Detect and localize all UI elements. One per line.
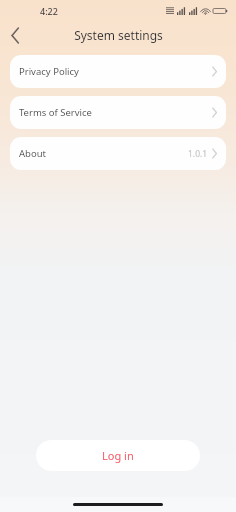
button[interactable]: Log in	[36, 440, 200, 471]
staticText: 4:22	[40, 5, 58, 17]
button[interactable]: Privacy Policy	[10, 55, 226, 88]
button[interactable]: Back	[0, 22, 30, 48]
staticText: Log in	[102, 448, 134, 463]
staticText: System settings	[74, 27, 163, 43]
staticText: About	[19, 147, 46, 160]
button[interactable]: Terms of Service	[10, 96, 226, 129]
staticText: Terms of Service	[19, 106, 92, 119]
button[interactable]: About	[10, 137, 226, 170]
staticText: 1.0.1	[188, 148, 208, 160]
staticText: Privacy Policy	[19, 65, 79, 78]
